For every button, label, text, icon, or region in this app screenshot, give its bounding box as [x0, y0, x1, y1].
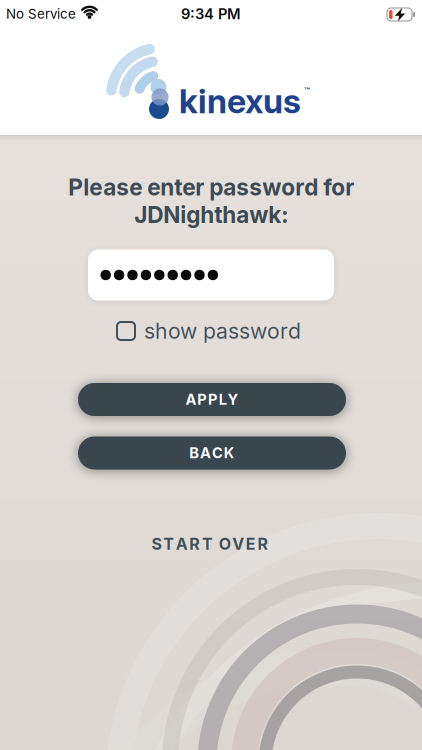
staticText: ™ — [304, 85, 310, 96]
button[interactable]: S — [152, 535, 268, 553]
staticText: A — [185, 391, 196, 408]
staticText: O — [219, 535, 231, 553]
staticText: T — [202, 535, 213, 553]
staticText: C — [212, 444, 223, 462]
button[interactable]: Password — [88, 249, 334, 300]
staticText: R — [257, 535, 268, 553]
staticText: V — [232, 535, 244, 553]
staticText: Please enter password for JDNighthawk: — [68, 174, 354, 228]
staticText: A — [200, 444, 211, 462]
button[interactable]: show password — [117, 318, 301, 344]
staticText: R — [189, 535, 200, 553]
staticText: L — [219, 391, 227, 408]
staticText: B — [189, 444, 199, 462]
staticText: K — [224, 444, 235, 462]
staticText: No Service — [6, 6, 76, 22]
staticText: E — [246, 535, 256, 553]
staticText: A — [176, 535, 188, 553]
button[interactable]: B — [78, 436, 346, 469]
staticText: P — [197, 391, 207, 408]
staticText: P — [208, 391, 218, 408]
staticText: 9:34 PM — [181, 5, 241, 23]
staticText: T — [163, 535, 174, 553]
staticText: kinexus — [179, 81, 301, 121]
staticText: show password — [144, 318, 301, 344]
staticText: Y — [228, 391, 239, 408]
button[interactable]: A — [78, 383, 346, 416]
staticText: S — [152, 535, 162, 553]
